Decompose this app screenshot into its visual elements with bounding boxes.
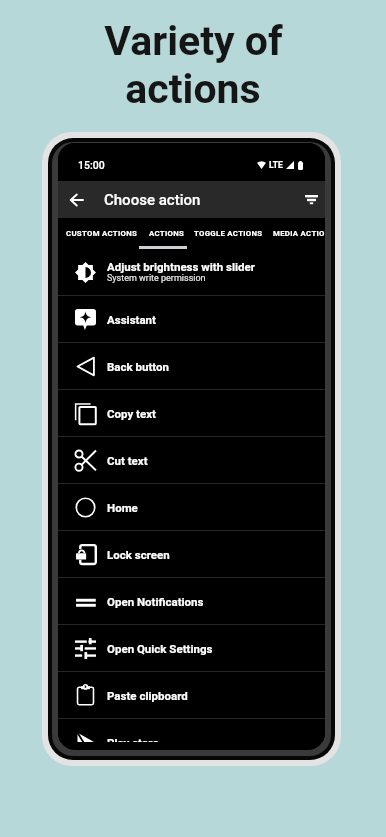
staticText: Cut text <box>107 454 148 467</box>
button[interactable]: ACTIONS <box>144 218 189 249</box>
staticText: LTE <box>269 160 283 170</box>
staticText: MEDIA ACTION <box>273 229 325 238</box>
button[interactable]: Copy text <box>58 390 325 436</box>
staticText: Play store <box>107 736 159 742</box>
staticText: System write permission <box>107 273 206 284</box>
button[interactable]: Assistant <box>58 296 325 342</box>
staticText: TOGGLE ACTIONS <box>194 229 263 238</box>
button[interactable]: Back <box>58 181 94 218</box>
button[interactable]: Cut text <box>58 437 325 483</box>
staticText: Home <box>107 501 138 514</box>
staticText: Assistant <box>107 313 156 326</box>
staticText: CUSTOM ACTIONS <box>66 229 138 238</box>
button[interactable]: Paste clipboard <box>58 672 325 718</box>
staticText: Choose action <box>104 191 201 209</box>
staticText: actions <box>125 65 261 113</box>
button[interactable]: Lock screen <box>58 531 325 577</box>
staticText: ACTIONS <box>149 229 185 238</box>
button[interactable]: MEDIA ACTION <box>267 218 325 249</box>
button[interactable]: Open Quick Settings <box>58 625 325 671</box>
button[interactable]: Adjust brightness with slider <box>58 249 325 295</box>
staticText: Paste clipboard <box>107 689 188 702</box>
button[interactable]: Home <box>58 484 325 530</box>
button[interactable]: Filter <box>297 181 325 218</box>
button[interactable]: TOGGLE ACTIONS <box>191 218 266 249</box>
button[interactable]: Play store <box>58 719 325 742</box>
staticText: Variety of <box>104 17 283 65</box>
staticText: 15:00 <box>78 159 105 171</box>
staticText: Copy text <box>107 407 156 420</box>
staticText: Adjust brightness with slider <box>107 260 255 273</box>
staticText: Lock screen <box>107 548 170 561</box>
staticText: Back button <box>107 360 169 373</box>
button[interactable]: Open Notifications <box>58 578 325 624</box>
staticText: Open Quick Settings <box>107 642 213 655</box>
staticText: Open Notifications <box>107 595 204 608</box>
button[interactable]: Back button <box>58 343 325 389</box>
button[interactable]: CUSTOM ACTIONS <box>61 218 143 249</box>
